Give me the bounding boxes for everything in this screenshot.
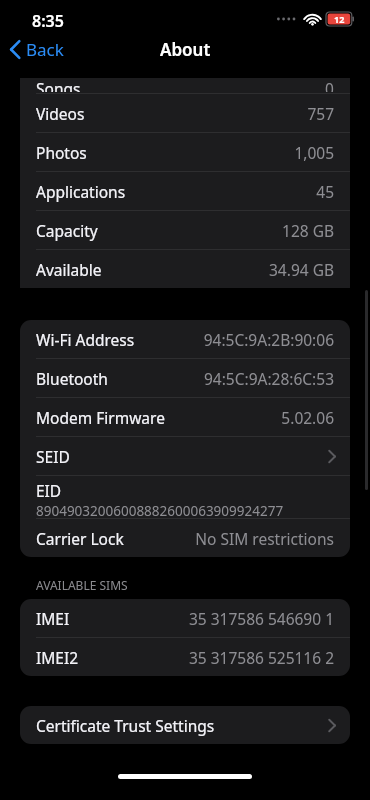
button[interactable]: Photos xyxy=(20,133,350,171)
staticText: Photos xyxy=(36,142,87,163)
button[interactable]: IMEI2 xyxy=(20,638,350,676)
button[interactable]: SEID xyxy=(20,437,350,475)
staticText: 89049032006008882600063909924277 xyxy=(36,502,284,518)
button[interactable]: IMEI xyxy=(20,599,350,637)
staticText: IMEI xyxy=(36,608,70,629)
staticText: 128 GB xyxy=(282,220,334,241)
staticText: 35 317586 525116 2 xyxy=(188,647,334,668)
button[interactable]: Modem Firmware xyxy=(20,398,350,436)
button[interactable]: Bluetooth xyxy=(20,359,350,397)
staticText: Capacity xyxy=(36,220,98,241)
staticText: 1,005 xyxy=(294,142,334,163)
staticText: Bluetooth xyxy=(36,368,108,389)
staticText: AVAILABLE SIMS xyxy=(36,577,128,593)
staticText: About xyxy=(160,38,211,61)
staticText: No SIM restrictions xyxy=(195,528,334,549)
button[interactable]: Songs xyxy=(20,78,350,93)
staticText: 5.02.06 xyxy=(281,407,334,428)
staticText: 94:5C:9A:28:6C:53 xyxy=(203,368,334,389)
staticText: 12 xyxy=(334,13,345,25)
other: Open Certificate Trust Settings xyxy=(328,719,336,732)
button[interactable]: Certificate Trust Settings xyxy=(20,706,350,744)
button[interactable]: Capacity xyxy=(20,211,350,249)
staticText: Certificate Trust Settings xyxy=(36,715,215,736)
button[interactable]: Available xyxy=(20,250,350,288)
staticText: Carrier Lock xyxy=(36,528,124,549)
button[interactable]: Wi-Fi Address xyxy=(20,320,350,358)
staticText: Back xyxy=(26,38,64,61)
staticText: IMEI2 xyxy=(36,647,79,668)
staticText: Videos xyxy=(36,103,85,124)
staticText: 94:5C:9A:2B:90:06 xyxy=(203,329,334,350)
staticText: 757 xyxy=(307,103,334,124)
other: Open SEID xyxy=(328,450,336,463)
staticText: EID xyxy=(36,480,62,501)
button[interactable]: Back xyxy=(0,32,76,67)
staticText: 34.94 GB xyxy=(268,259,334,280)
staticText: SEID xyxy=(36,446,70,467)
button[interactable]: Carrier Lock xyxy=(20,519,350,557)
staticText: Applications xyxy=(36,181,126,202)
button[interactable]: EID xyxy=(20,476,350,518)
staticText: 8:35 xyxy=(32,10,64,32)
button[interactable]: Applications xyxy=(20,172,350,210)
staticText: 35 317586 546690 1 xyxy=(188,608,334,629)
staticText: Wi-Fi Address xyxy=(36,329,135,350)
staticText: 45 xyxy=(316,181,334,202)
staticText: Modem Firmware xyxy=(36,407,165,428)
staticText: Available xyxy=(36,259,102,280)
button[interactable]: Videos xyxy=(20,94,350,132)
staticText: 0 xyxy=(325,78,334,92)
staticText: Songs xyxy=(36,78,81,92)
